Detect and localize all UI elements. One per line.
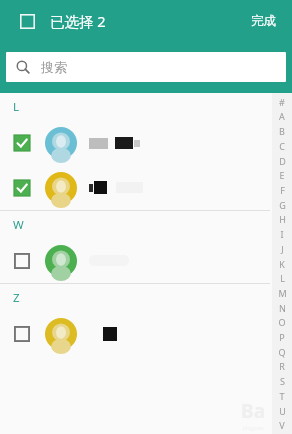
staticText: I [280, 228, 284, 240]
staticText: Ba [241, 398, 266, 424]
staticText: 已选择 2 [50, 11, 106, 31]
staticText: U [279, 405, 286, 417]
staticText: Z [13, 290, 20, 306]
staticText: 完成 [251, 13, 276, 29]
button[interactable] [0, 120, 292, 165]
staticText: Q [278, 346, 286, 358]
staticText: R [279, 360, 285, 372]
staticText: L [13, 99, 20, 115]
staticText: W [13, 217, 24, 233]
button[interactable] [0, 311, 292, 356]
staticText: S [280, 375, 285, 387]
staticText: E [279, 169, 285, 181]
button[interactable]: Alphabet index [272, 93, 292, 434]
staticText: K [279, 258, 285, 270]
staticText: V [279, 419, 285, 431]
button[interactable] [0, 238, 292, 283]
staticText: J [281, 243, 284, 255]
staticText: O [278, 316, 286, 328]
button[interactable] [0, 165, 292, 210]
staticText: T [279, 390, 285, 402]
staticText: H [279, 213, 286, 225]
staticText: F [280, 184, 285, 196]
staticText: G [279, 199, 286, 211]
button[interactable]: 完成 [245, 7, 282, 35]
button[interactable]: Select all [14, 8, 40, 34]
staticText: 搜索 [41, 59, 67, 75]
staticText: M [278, 287, 287, 299]
staticText: N [279, 302, 286, 314]
staticText: B [279, 125, 285, 137]
button[interactable]: 搜索 [6, 52, 286, 82]
staticText: P [279, 331, 285, 343]
staticText: # [279, 96, 285, 108]
staticText: D [279, 155, 286, 167]
staticText: A [279, 110, 285, 122]
staticText: C [279, 140, 285, 152]
staticText: L [280, 272, 285, 284]
